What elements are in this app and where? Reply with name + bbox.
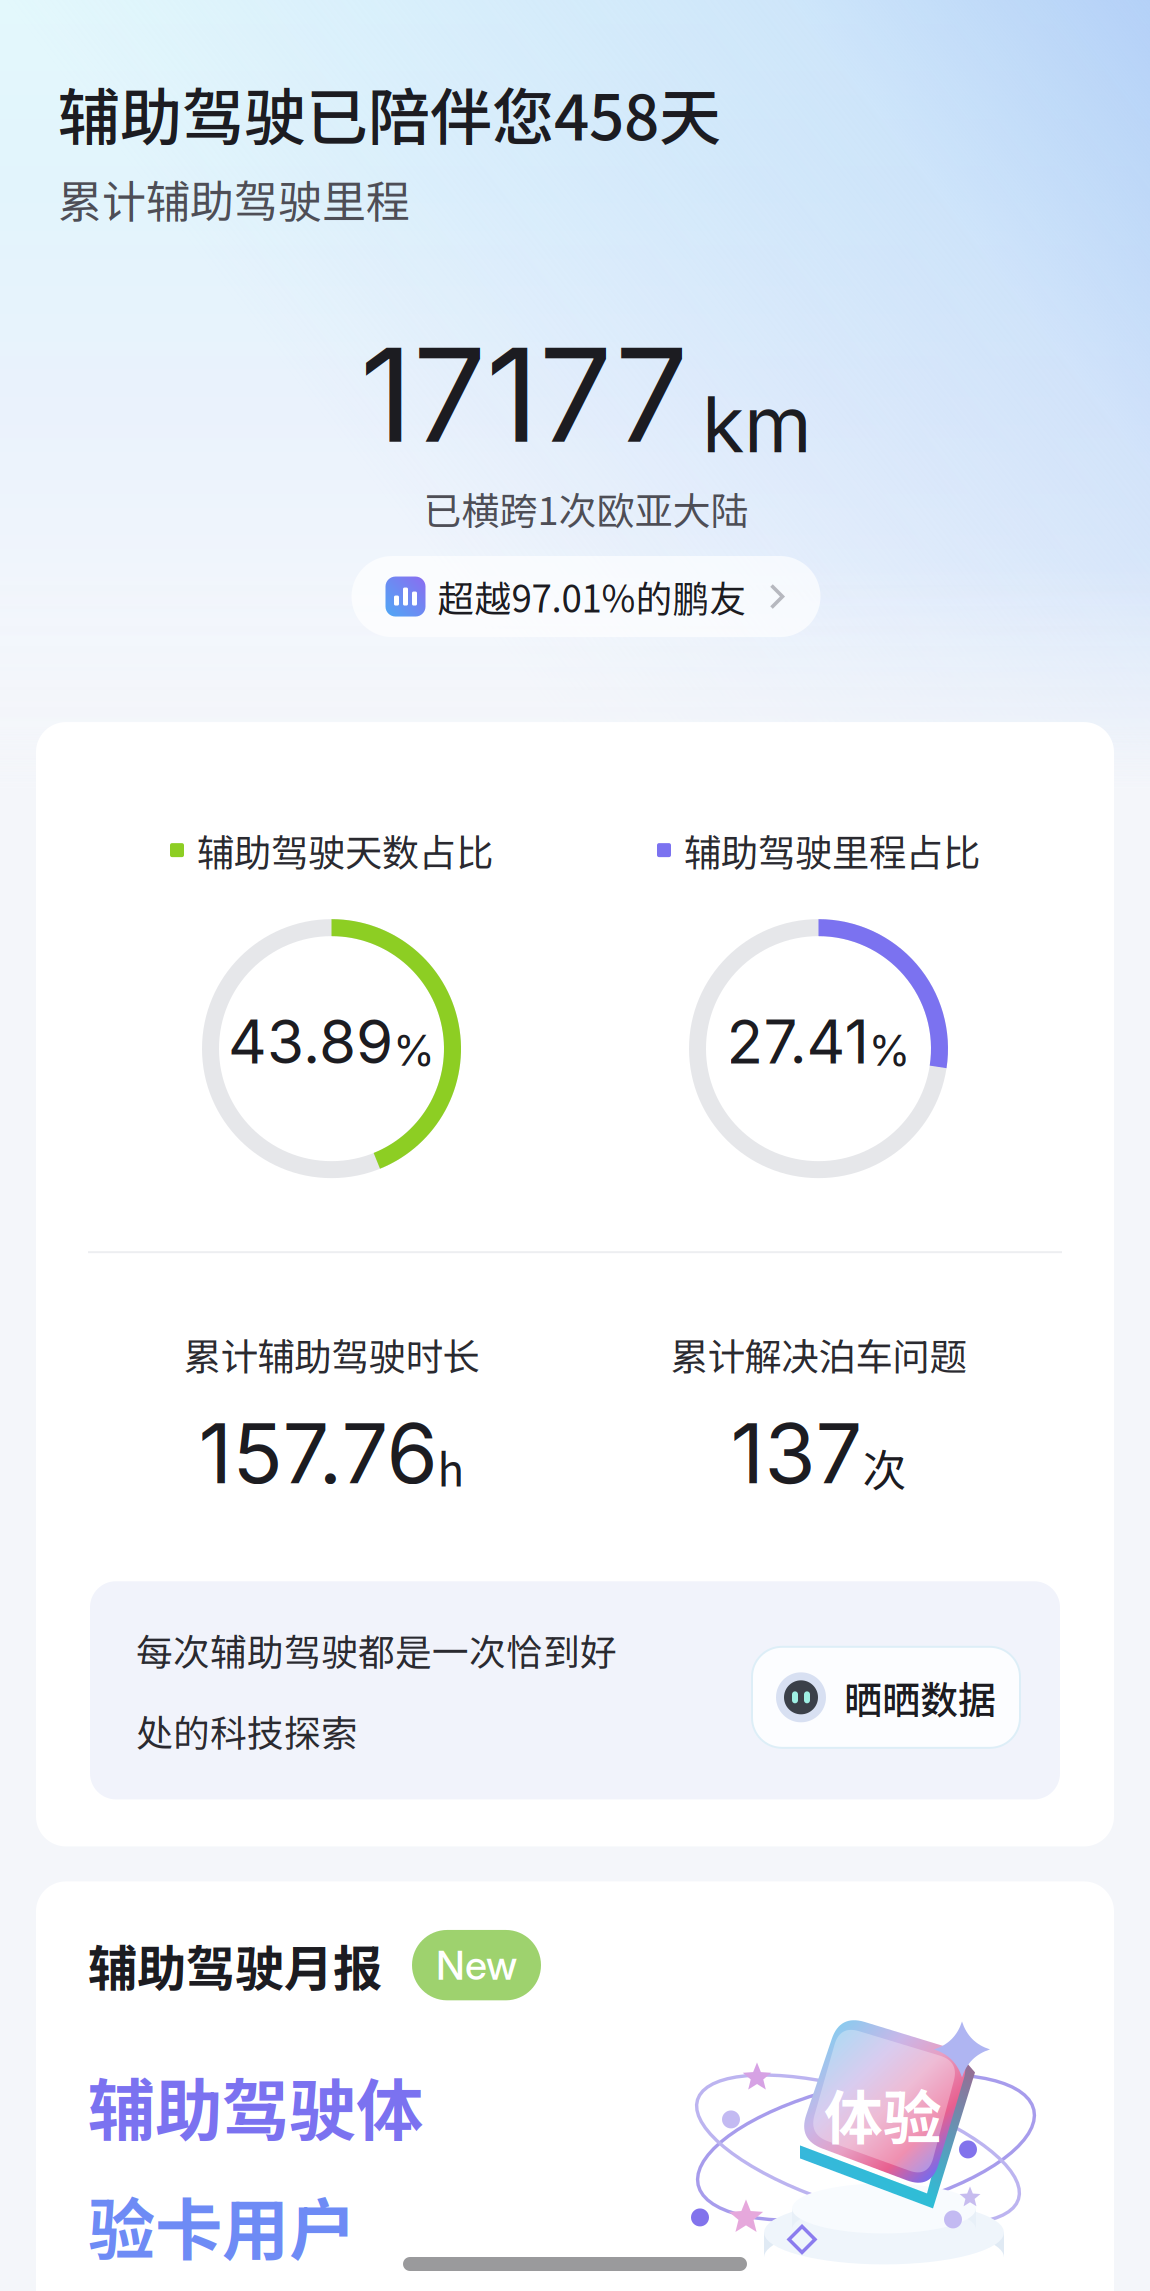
staticText: %	[868, 1024, 910, 1076]
staticText: 验卡用户	[88, 2176, 356, 2274]
staticText: 辅助驾驶已陪伴您458天	[58, 68, 721, 158]
staticText: 辅助驾驶里程占比	[684, 823, 980, 877]
staticText: 辅助驾驶体	[88, 2057, 423, 2154]
staticText: 辅助驾驶天数占比	[197, 823, 493, 877]
staticText: 辅助驾驶月报	[88, 1929, 382, 2001]
staticText: h	[437, 1435, 464, 1499]
staticText: 累计解决泊车问题	[670, 1327, 966, 1381]
staticText: 累计辅助驾驶里程	[58, 167, 410, 230]
staticText: 累计辅助驾驶时长	[183, 1327, 479, 1381]
staticText: 晒晒数据	[844, 1670, 996, 1725]
staticText: 超越97.01%的鹏友	[437, 570, 746, 623]
staticText: 每次辅助驾驶都是一次恰到好	[136, 1623, 617, 1676]
staticText: 137	[730, 1403, 862, 1503]
staticText: 处的科技探索	[136, 1704, 358, 1757]
button[interactable]: 超越97.01%的鹏友	[351, 556, 820, 637]
staticText: New	[436, 1941, 517, 1989]
staticText: 17177	[360, 316, 688, 473]
button[interactable]: 晒晒数据	[752, 1647, 1020, 1748]
staticText: 43.89	[228, 1005, 393, 1078]
staticText: km	[702, 377, 812, 471]
staticText: 次	[862, 1435, 906, 1499]
staticText: 已横跨1次欧亚大陆	[423, 481, 748, 536]
staticText: %	[393, 1024, 435, 1076]
staticText: 157.76	[198, 1403, 437, 1503]
staticText: 体验	[824, 2071, 942, 2156]
staticText: 27.41	[726, 1005, 868, 1078]
